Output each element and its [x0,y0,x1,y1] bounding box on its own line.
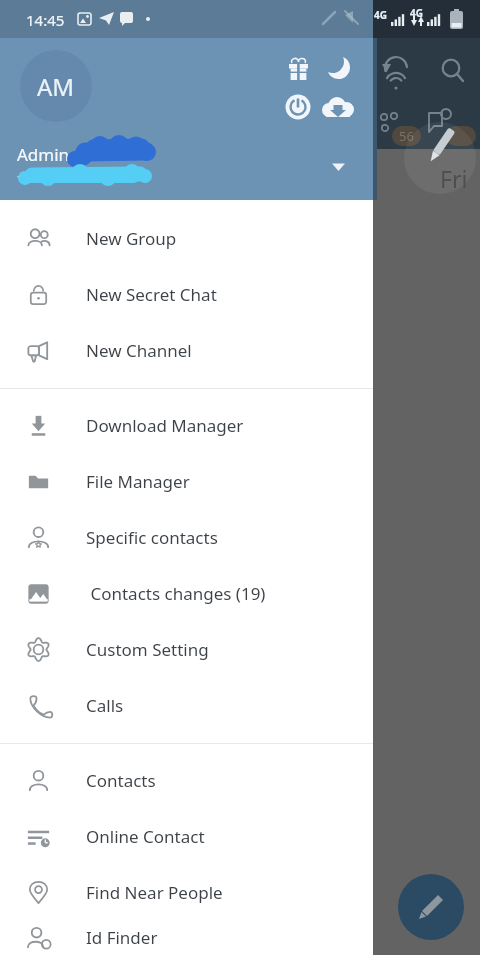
staticText: Download Manager [86,414,244,437]
staticText: Admin [17,143,70,166]
button[interactable]: Night mode [320,50,356,86]
staticText: 4G [374,8,387,22]
button[interactable]: Proxy settings [379,50,417,88]
staticText: Specific contacts [86,526,218,549]
button[interactable]: New Channel [0,322,373,378]
button[interactable]: New message [398,874,464,940]
button[interactable]: Search [436,52,472,88]
button[interactable]: Profile photo [20,50,92,122]
staticText: 56 [399,127,414,145]
staticText: Online Contact [86,825,205,848]
button[interactable]: Download [320,89,356,125]
staticText: File Manager [86,470,190,493]
button[interactable]: Find Near People [0,864,373,920]
staticText: 14:45 [26,10,65,30]
staticText: New Group [86,227,177,250]
button[interactable]: New Secret Chat [0,266,373,322]
button[interactable]: File Manager [0,453,373,509]
button[interactable]: Online Contact [0,808,373,864]
staticText: + [17,166,26,186]
button[interactable]: Expand accounts [322,150,356,184]
staticText: New Secret Chat [86,283,217,306]
button[interactable]: Contacts [0,752,373,808]
button[interactable]: Specific contacts [0,509,373,565]
button[interactable]: Id Finder [0,920,373,955]
staticText: Contacts changes (19) [86,582,266,605]
staticText: Calls [86,694,124,717]
staticText: Fri [440,163,468,194]
button[interactable]: Calls [0,677,373,733]
button[interactable]: Power [280,89,316,125]
button[interactable]: Contacts changes (19) [0,565,373,621]
button[interactable]: New Group [0,210,373,266]
button[interactable]: Download Manager [0,397,373,453]
staticText: Find Near People [86,881,223,904]
button[interactable]: Gift [280,50,316,86]
staticText: Contacts [86,769,156,792]
staticText: New Channel [86,339,192,362]
staticText: Custom Setting [86,638,209,661]
staticText: AM [37,70,75,103]
staticText: Id Finder [86,926,158,949]
staticText: 4G [410,6,423,20]
button[interactable]: Custom Setting [0,621,373,677]
